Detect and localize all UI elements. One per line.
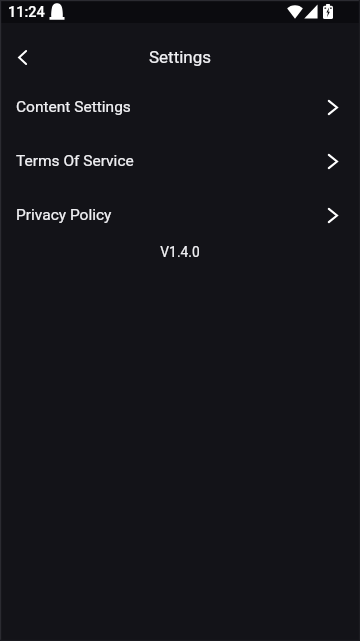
button[interactable]: Terms Of Service bbox=[0, 134, 360, 188]
button[interactable]: Back bbox=[0, 35, 44, 79]
button[interactable]: Content Settings bbox=[0, 80, 360, 134]
button[interactable]: Privacy Policy bbox=[0, 188, 360, 242]
staticText: Content Settings bbox=[16, 98, 131, 116]
staticText: V1.4.0 bbox=[0, 244, 360, 260]
staticText: 11:24 bbox=[8, 4, 45, 21]
staticText: Privacy Policy bbox=[16, 206, 112, 224]
staticText: Settings bbox=[149, 47, 212, 67]
staticText: Terms Of Service bbox=[16, 152, 134, 170]
